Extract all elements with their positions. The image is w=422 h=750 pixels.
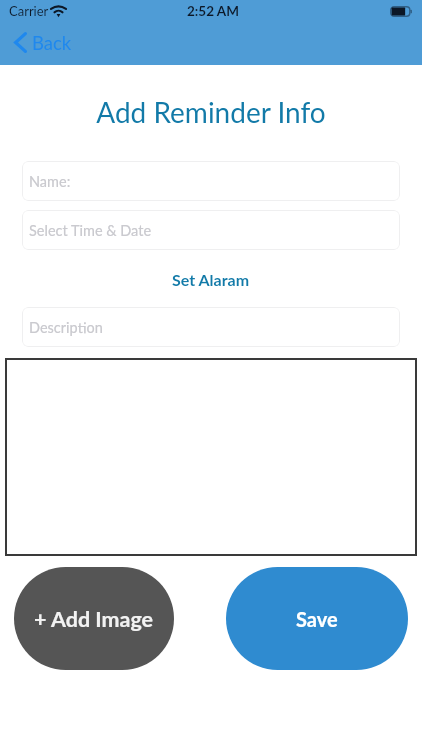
- button[interactable]: Name:: [22, 161, 400, 201]
- button[interactable]: Save: [226, 567, 408, 670]
- button[interactable]: + Add Image: [14, 567, 174, 670]
- button[interactable]: Back: [8, 28, 74, 58]
- button[interactable]: Select Time & Date: [22, 210, 400, 250]
- staticText: 2:52 AM: [187, 3, 239, 19]
- staticText: Back: [32, 32, 72, 54]
- staticText: Description: [29, 319, 103, 336]
- staticText: Select Time & Date: [29, 222, 152, 239]
- staticText: Carrier: [9, 3, 49, 19]
- staticText: Name:: [29, 173, 71, 190]
- button[interactable]: Image preview: [5, 358, 417, 556]
- staticText: + Add Image: [34, 606, 154, 632]
- button[interactable]: Set Alaram: [162, 268, 260, 290]
- staticText: Save: [296, 607, 338, 631]
- button[interactable]: Description: [22, 307, 400, 347]
- staticText: Add Reminder Info: [0, 95, 422, 129]
